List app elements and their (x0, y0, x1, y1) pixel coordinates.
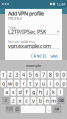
staticText: b (39, 97, 42, 104)
staticText: g (32, 88, 35, 96)
staticText: 7 (42, 71, 45, 78)
button[interactable]: q (1, 80, 6, 87)
staticText: r (22, 80, 24, 87)
button[interactable]: 3 (14, 71, 19, 78)
staticText: CANCEL (30, 53, 46, 59)
button[interactable]: y (34, 80, 40, 87)
staticText: ⇧ (4, 98, 7, 103)
staticText: 12:44 (56, 1, 65, 7)
button[interactable]: 9 (54, 71, 60, 78)
staticText: ☺ (15, 107, 19, 111)
staticText: Next (54, 107, 59, 111)
button[interactable]: e (14, 80, 19, 87)
button[interactable]: 7 (41, 71, 46, 78)
staticText: 8 (49, 71, 52, 78)
staticText: e (15, 80, 18, 87)
button[interactable]: 8 (47, 71, 53, 78)
staticText: d (19, 88, 22, 96)
staticText: s (12, 88, 15, 96)
button[interactable]: x (17, 97, 23, 104)
staticText: Server address (8, 39, 35, 44)
button[interactable]: 4 (21, 71, 26, 78)
button[interactable]: ☺ (15, 106, 20, 113)
button[interactable]: ⇧ (2, 97, 9, 104)
staticText: y (35, 80, 38, 87)
staticText: j (46, 88, 47, 96)
staticText: Type (8, 24, 16, 30)
button[interactable]: 5 (27, 71, 33, 78)
button[interactable]: z (11, 97, 16, 104)
staticText: f (26, 88, 28, 96)
staticText: 9 (55, 71, 58, 78)
button[interactable]: ?123 (6, 106, 14, 113)
button[interactable]: l (58, 88, 63, 96)
staticText: c (25, 97, 28, 104)
staticText: 4 (22, 71, 25, 78)
button[interactable]: 0 (61, 71, 66, 78)
button[interactable]: d (17, 88, 23, 96)
staticText: u (42, 80, 45, 87)
staticText: L2TP/IPSec PSK (8, 28, 46, 35)
staticText: l (60, 88, 61, 96)
button[interactable]: h (37, 88, 43, 96)
button[interactable]: i (47, 80, 53, 87)
button[interactable]: . (46, 106, 51, 113)
button[interactable]: 6 (34, 71, 40, 78)
button[interactable]: CANCEL (29, 53, 47, 58)
staticText: n (45, 97, 48, 104)
button[interactable]: a (4, 88, 9, 96)
button[interactable]: s (11, 88, 16, 96)
staticText: 5 (29, 71, 32, 78)
staticText: i (50, 80, 51, 87)
staticText: t (29, 80, 31, 87)
button[interactable]: k (51, 88, 56, 96)
staticText: . (48, 106, 49, 113)
button[interactable]: SAVE (49, 53, 59, 58)
staticText: z (12, 97, 15, 104)
staticText: example (26, 63, 41, 68)
staticText: 1 (2, 71, 5, 78)
button[interactable]: n (44, 97, 50, 104)
staticText: ▾ (57, 29, 59, 34)
button[interactable]: ⌫ (58, 97, 65, 104)
button[interactable]: c (24, 97, 30, 104)
staticText: q (2, 80, 5, 87)
button[interactable]: r (21, 80, 26, 87)
staticText: vpn.example.com (8, 42, 51, 49)
button[interactable]: v (31, 97, 36, 104)
button[interactable]: b (37, 97, 43, 104)
button[interactable]: w (7, 80, 13, 87)
button[interactable]: g (31, 88, 36, 96)
button[interactable]: f (24, 88, 30, 96)
button[interactable]: 2 (7, 71, 13, 78)
button[interactable]: 1 (1, 71, 6, 78)
staticText: SAVE (50, 53, 58, 59)
staticText: ?123 (6, 107, 13, 111)
staticText: 2 (9, 71, 12, 78)
staticText: k (52, 88, 55, 96)
button[interactable]: j (44, 88, 50, 96)
staticText: m (51, 97, 56, 104)
button[interactable]: p (61, 80, 66, 87)
button[interactable]: m (51, 97, 56, 104)
staticText: o (55, 80, 58, 87)
staticText: 3 (15, 71, 18, 78)
staticText: p (62, 80, 65, 87)
staticText: 0 (62, 71, 65, 78)
staticText: ⌫ (58, 98, 64, 103)
button[interactable]: Next (52, 106, 61, 113)
button[interactable]: u (41, 80, 46, 87)
staticText: Add VPN profile (8, 10, 44, 17)
button[interactable]: t (27, 80, 33, 87)
staticText: 6 (35, 71, 38, 78)
staticText: w (8, 80, 12, 87)
button[interactable]: o (54, 80, 60, 87)
staticText: a (5, 88, 8, 96)
staticText: v (32, 97, 35, 104)
staticText: h (39, 88, 42, 96)
staticText: PROFILE (8, 16, 22, 21)
staticText: x (19, 97, 22, 104)
